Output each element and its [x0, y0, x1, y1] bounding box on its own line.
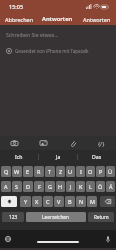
staticText: 123	[9, 214, 18, 221]
staticText: 15:05	[9, 3, 24, 10]
button[interactable]: Camera	[0, 136, 29, 150]
button[interactable]: Return	[88, 212, 114, 222]
staticText: X	[35, 198, 39, 205]
button[interactable]: E	[23, 166, 33, 177]
button[interactable]: J	[66, 181, 75, 192]
button[interactable]: S	[12, 181, 22, 192]
staticText: E	[26, 168, 30, 175]
staticText: R	[37, 168, 41, 175]
staticText: J	[70, 183, 72, 190]
staticText: F	[38, 183, 41, 190]
staticText: P	[99, 168, 103, 175]
button[interactable]: A	[1, 181, 11, 192]
button[interactable]: X	[32, 196, 42, 207]
staticText: Q	[4, 168, 9, 175]
button[interactable]: P	[96, 166, 105, 177]
button[interactable]: Ich	[0, 150, 38, 163]
button[interactable]: H	[56, 181, 65, 192]
staticText: D	[26, 183, 31, 190]
button[interactable]: Ö	[96, 181, 105, 192]
staticText: V	[57, 198, 61, 205]
staticText: Gesendet von iPhone mit Tapatalk	[15, 48, 89, 54]
staticText: I	[80, 168, 82, 175]
button[interactable]: Insert code	[87, 136, 116, 150]
button[interactable]: Y	[20, 196, 31, 207]
button[interactable]: Leerzeichen	[26, 212, 86, 222]
button[interactable]: B	[65, 196, 75, 207]
staticText: O	[88, 168, 93, 175]
staticText: K	[79, 183, 83, 190]
button[interactable]: N	[76, 196, 86, 207]
button[interactable]: Ja	[39, 150, 77, 163]
staticText: Ü	[108, 168, 113, 175]
staticText: N	[79, 198, 84, 205]
button[interactable]: I	[76, 166, 85, 177]
button[interactable]: W	[12, 166, 22, 177]
staticText: Return	[94, 214, 109, 220]
button[interactable]: Gesendet von iPhone mit Tapatalk	[0, 45, 116, 56]
staticText: Abbrechen	[5, 16, 34, 23]
button[interactable]: Das	[78, 150, 116, 163]
button[interactable]: Switch keyboard	[3, 234, 13, 244]
staticText: C	[46, 198, 50, 205]
button[interactable]: Schreiben Sie etwas...	[0, 29, 116, 40]
staticText: S	[15, 183, 19, 190]
staticText: Ich	[15, 153, 23, 160]
staticText: W	[14, 168, 20, 175]
staticText: Ö	[98, 183, 103, 190]
button[interactable]: Ä	[106, 181, 115, 192]
button[interactable]: Dictate	[103, 234, 113, 244]
button[interactable]: Attach file	[58, 136, 87, 150]
staticText: M	[90, 198, 95, 205]
button[interactable]: D	[23, 181, 33, 192]
button[interactable]: F	[34, 181, 44, 192]
staticText: Das	[92, 153, 102, 160]
button[interactable]: Abbrechen	[0, 13, 38, 25]
button[interactable]: C	[43, 196, 53, 207]
button[interactable]: L	[86, 181, 95, 192]
staticText: Z	[59, 168, 63, 175]
staticText: L	[89, 183, 92, 190]
staticText: U	[68, 168, 73, 175]
button[interactable]: U	[66, 166, 75, 177]
staticText: A	[4, 183, 8, 190]
button[interactable]: O	[86, 166, 95, 177]
staticText: Leerzeichen	[42, 214, 70, 221]
staticText: G	[48, 183, 53, 190]
staticText: B	[68, 198, 72, 205]
button[interactable]: Antworten	[77, 13, 116, 25]
staticText: Antworten	[42, 15, 73, 23]
button[interactable]: 123	[2, 212, 24, 222]
button[interactable]: T	[45, 166, 55, 177]
button[interactable]: R	[34, 166, 44, 177]
staticText: Antworten	[83, 16, 111, 23]
staticText: Ja	[56, 153, 61, 160]
staticText: Ä	[109, 183, 113, 190]
button[interactable]: G	[45, 181, 55, 192]
button[interactable]: Q	[1, 166, 11, 177]
staticText: H	[58, 183, 63, 190]
staticText: T	[48, 168, 52, 175]
button[interactable]: K	[76, 181, 85, 192]
button[interactable]: Backspace	[100, 196, 115, 207]
button[interactable]: V	[54, 196, 64, 207]
staticText: Y	[24, 198, 28, 205]
button[interactable]: Shift	[1, 196, 17, 207]
button[interactable]: Photo library	[29, 136, 58, 150]
button[interactable]: Z	[56, 166, 65, 177]
button[interactable]: Ü	[106, 166, 115, 177]
staticText: Schreiben Sie etwas...	[6, 31, 59, 38]
button[interactable]: M	[87, 196, 97, 207]
staticText: {/}	[98, 140, 105, 147]
